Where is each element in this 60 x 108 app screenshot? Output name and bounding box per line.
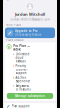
staticText: Pro Plan — Active [13,44,30,51]
staticText: Unlock every feature [15,33,42,36]
staticText: YOUR PLAN [6,23,21,27]
staticText: Ad-free experience [16,76,31,83]
button[interactable]: Plan support [5,103,55,108]
button[interactable]: Back [5,0,15,1]
staticText: Jordan Mitchell [15,11,45,17]
staticText: Manage subscription [15,94,45,98]
staticText: Upgrade to Pro [15,29,38,33]
staticText: Plan support [12,104,30,108]
staticText: jordan.mitchell@example.com [10,18,49,21]
staticText: Priority customer support [16,64,28,75]
button[interactable]: Upgrade to Pro [3,27,57,38]
staticText: PLAN DETAILS [6,38,23,42]
staticText: Unlimited cloud backups [16,52,30,63]
button[interactable]: Manage subscription [5,91,55,101]
staticText: Early access to features [16,84,31,91]
